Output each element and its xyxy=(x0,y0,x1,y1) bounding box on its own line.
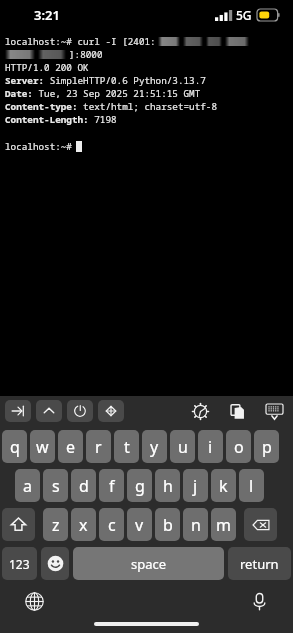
button[interactable]: l xyxy=(239,469,264,502)
button[interactable]: s xyxy=(43,469,68,502)
button[interactable]: 123 xyxy=(2,547,37,580)
button[interactable]: t xyxy=(114,430,139,463)
button[interactable]: space xyxy=(73,547,224,580)
button[interactable]: Control xyxy=(36,400,62,422)
staticText: ]:8000 xyxy=(69,48,103,61)
button[interactable]: p xyxy=(254,430,279,463)
button[interactable]: v xyxy=(127,508,152,541)
button[interactable]: g xyxy=(127,469,152,502)
button[interactable]: Shift xyxy=(2,508,35,541)
staticText: h xyxy=(163,475,173,497)
staticText: 123 xyxy=(9,556,30,572)
staticText: o xyxy=(234,436,244,458)
button[interactable]: n xyxy=(183,508,208,541)
staticText: k xyxy=(219,475,228,497)
staticText: x xyxy=(79,514,88,536)
button[interactable]: m xyxy=(211,508,236,541)
staticText: y xyxy=(150,436,159,458)
staticText: Date: Tue, 23 Sep 2025 21:51:15 GMT xyxy=(5,87,201,100)
button[interactable]: j xyxy=(183,469,208,502)
staticText: Content-Length: 7198 xyxy=(5,113,117,126)
staticText: p xyxy=(262,436,272,458)
button[interactable]: k xyxy=(211,469,236,502)
button[interactable]: e xyxy=(58,430,83,463)
staticText: f xyxy=(109,475,115,497)
button[interactable]: Change keyboard xyxy=(21,588,47,614)
button[interactable]: c xyxy=(99,508,124,541)
button[interactable]: w xyxy=(30,430,55,463)
staticText: space xyxy=(131,555,167,573)
staticText: 5G xyxy=(236,7,252,23)
button[interactable]: d xyxy=(71,469,96,502)
button[interactable]: Settings xyxy=(188,399,212,423)
button[interactable]: o xyxy=(226,430,251,463)
staticText: s xyxy=(52,475,60,497)
staticText: b xyxy=(163,514,173,536)
staticText: r xyxy=(95,436,102,458)
staticText: n xyxy=(191,514,201,536)
button[interactable]: Emoji xyxy=(41,547,69,580)
staticText: m xyxy=(216,514,231,536)
staticText: 3:21 xyxy=(34,6,60,24)
staticText: c xyxy=(108,514,116,536)
button[interactable]: Paste xyxy=(225,399,249,423)
staticText: e xyxy=(66,436,76,458)
button[interactable]: i xyxy=(198,430,223,463)
button[interactable]: f xyxy=(99,469,124,502)
staticText: t xyxy=(124,436,130,458)
button[interactable]: Arrow keys xyxy=(98,400,124,422)
button[interactable]: Hide keyboard xyxy=(262,399,286,423)
button[interactable]: y xyxy=(142,430,167,463)
button[interactable]: Backspace xyxy=(244,508,277,541)
staticText: localhost:~# curl -I [2401: xyxy=(5,35,156,48)
button[interactable]: z xyxy=(43,508,68,541)
button[interactable]: q xyxy=(2,430,27,463)
staticText: d xyxy=(79,475,89,497)
staticText: j xyxy=(193,475,198,497)
staticText: l xyxy=(249,475,254,497)
button[interactable]: b xyxy=(155,508,180,541)
staticText: localhost:~# xyxy=(5,140,72,153)
staticText: Content-type: text/html; charset=utf-8 xyxy=(5,100,217,113)
staticText: a xyxy=(23,475,32,497)
staticText: HTTP/1.0 200 OK xyxy=(5,61,89,74)
staticText: return xyxy=(240,555,279,573)
button[interactable]: a xyxy=(15,469,40,502)
button[interactable]: Undo xyxy=(67,400,93,422)
staticText: q xyxy=(10,436,20,458)
staticText: z xyxy=(52,514,60,536)
button[interactable]: x xyxy=(71,508,96,541)
staticText: v xyxy=(135,514,144,536)
staticText: u xyxy=(178,436,188,458)
button[interactable]: Dictation xyxy=(246,588,272,614)
button[interactable]: return xyxy=(228,547,291,580)
button[interactable]: r xyxy=(86,430,111,463)
staticText: w xyxy=(36,436,49,458)
staticText: i xyxy=(208,436,213,458)
button[interactable]: Tab xyxy=(5,400,31,422)
staticText: g xyxy=(135,475,145,497)
button[interactable]: h xyxy=(155,469,180,502)
button[interactable]: u xyxy=(170,430,195,463)
staticText: Server: SimpleHTTP/0.6 Python/3.13.7 xyxy=(5,74,206,87)
